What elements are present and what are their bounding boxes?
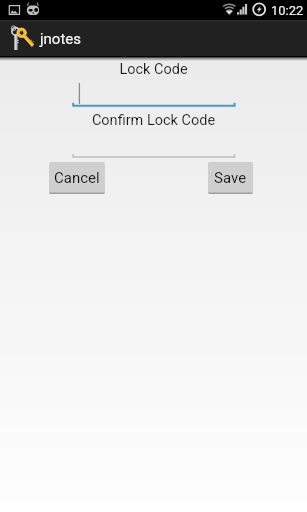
staticText: Lock Code <box>0 61 307 78</box>
button[interactable]: Save <box>208 162 253 194</box>
button[interactable] <box>72 78 236 104</box>
staticText: Confirm Lock Code <box>0 112 307 129</box>
staticText: Cancel <box>54 169 100 187</box>
staticText: 10:22 <box>271 3 304 18</box>
staticText: jnotes <box>40 30 82 48</box>
button[interactable]: Cancel <box>49 162 105 194</box>
other: App icon <box>10 26 34 50</box>
staticText: Save <box>214 169 247 187</box>
